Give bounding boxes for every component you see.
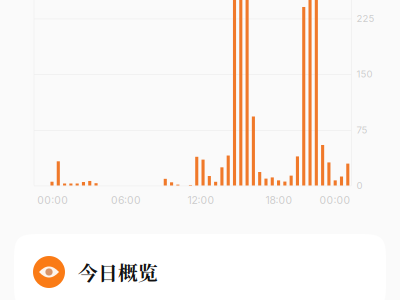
staticText: 00:00 <box>319 194 350 207</box>
staticText: 00:00 <box>37 194 68 207</box>
button[interactable]: 今日概览 <box>14 234 386 300</box>
staticText: 12:00 <box>187 194 214 207</box>
staticText: 0 <box>356 180 362 191</box>
staticText: 225 <box>356 13 374 24</box>
staticText: 18:00 <box>265 194 292 207</box>
staticText: 06:00 <box>111 194 141 207</box>
staticText: 75 <box>356 124 367 136</box>
staticText: 150 <box>356 68 372 80</box>
staticText: 今日概览 <box>78 258 158 286</box>
